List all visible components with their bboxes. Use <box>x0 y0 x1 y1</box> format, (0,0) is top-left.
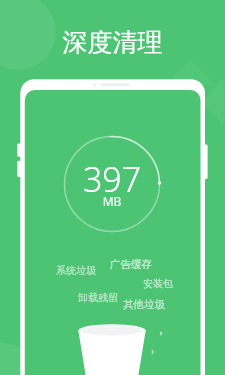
staticText: 其他垃圾 <box>119 298 169 315</box>
button[interactable]: 开始清理 Clean now <box>64 136 160 232</box>
button[interactable]: 广告缓存 <box>106 258 156 275</box>
staticText: 安装包 <box>139 277 177 293</box>
button[interactable]: 系统垃圾 <box>52 264 100 280</box>
staticText: 卸载残留 <box>74 291 122 307</box>
button[interactable]: 其他垃圾 <box>119 298 169 315</box>
staticText: 深度清理 <box>50 27 175 57</box>
staticText: 系统垃圾 <box>52 264 100 280</box>
staticText: MB <box>52 193 172 209</box>
staticText: 397 <box>52 156 172 200</box>
staticText: 广告缓存 <box>106 258 156 275</box>
button[interactable]: 安装包 <box>139 277 177 293</box>
button[interactable]: 卸载残留 <box>74 291 122 307</box>
